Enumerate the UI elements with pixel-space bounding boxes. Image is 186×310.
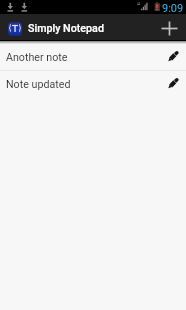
staticText: 9:09	[162, 2, 184, 15]
staticText: Another note	[6, 51, 68, 64]
staticText: Note updated	[6, 78, 71, 91]
button[interactable]: Edit note	[160, 44, 186, 70]
button[interactable]: Another note	[0, 44, 186, 70]
button[interactable]: Note updated	[0, 71, 186, 97]
button[interactable]: New note	[152, 17, 186, 40]
staticText: Simply Notepad	[28, 22, 104, 35]
button[interactable]: Edit note	[160, 71, 186, 97]
